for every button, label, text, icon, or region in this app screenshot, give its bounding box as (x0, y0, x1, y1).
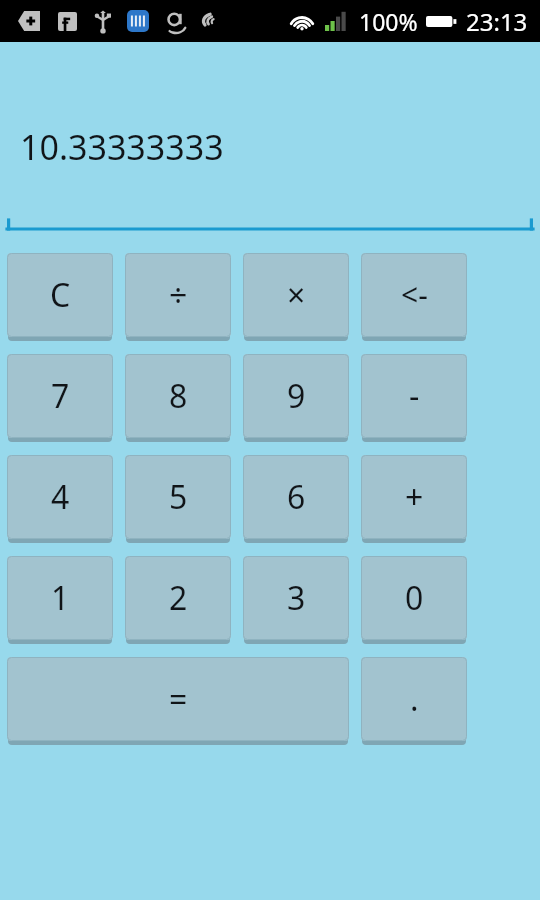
staticText: = (169, 677, 188, 721)
staticText: 23:13 (466, 5, 528, 38)
staticText: 6 (287, 475, 306, 519)
staticText: 4 (51, 475, 70, 519)
staticText: . (410, 677, 419, 721)
staticText: 7 (51, 374, 70, 418)
staticText: 100% (359, 6, 418, 37)
staticText: <- (401, 274, 428, 315)
button[interactable]: + (361, 455, 467, 542)
staticText: × (287, 273, 306, 317)
button[interactable]: <- (361, 253, 467, 340)
button[interactable]: 1 (7, 556, 113, 643)
button[interactable]: = (7, 657, 349, 744)
staticText: 2 (169, 576, 188, 620)
button[interactable]: 5 (125, 455, 231, 542)
staticText: 5 (169, 475, 188, 519)
button[interactable]: - (361, 354, 467, 441)
staticText: 1 (51, 576, 70, 620)
button[interactable]: 3 (243, 556, 349, 643)
button[interactable]: 0 (361, 556, 467, 643)
button[interactable]: C (7, 253, 113, 340)
staticText: 8 (169, 374, 188, 418)
button[interactable]: × (243, 253, 349, 340)
staticText: C (50, 273, 71, 317)
button[interactable]: 6 (243, 455, 349, 542)
staticText: 10.33333333 (20, 124, 224, 170)
staticText: + (405, 475, 424, 519)
button[interactable]: 7 (7, 354, 113, 441)
button[interactable]: 9 (243, 354, 349, 441)
button[interactable]: 2 (125, 556, 231, 643)
staticText: - (409, 374, 420, 418)
staticText: ÷ (169, 273, 188, 317)
button[interactable]: ÷ (125, 253, 231, 340)
staticText: 0 (405, 576, 424, 620)
button[interactable]: . (361, 657, 467, 744)
staticText: 9 (287, 374, 306, 418)
staticText: 3 (287, 576, 306, 620)
button[interactable]: 8 (125, 354, 231, 441)
button[interactable]: 4 (7, 455, 113, 542)
